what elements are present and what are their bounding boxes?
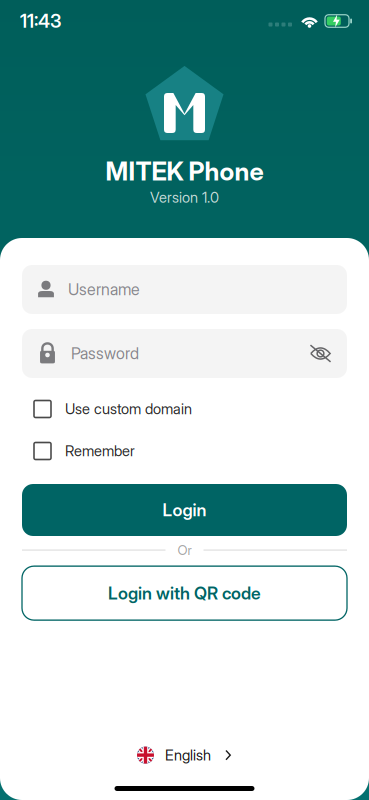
staticText: Use custom domain [65, 400, 192, 418]
staticText: Or [177, 542, 191, 558]
button[interactable]: Use custom domain [22, 395, 347, 423]
staticText: MITEK Phone [105, 156, 263, 187]
staticText: Remember [65, 442, 135, 460]
staticText: Login [162, 499, 206, 520]
staticText: Username [68, 280, 140, 299]
button[interactable]: Login [22, 484, 347, 536]
button[interactable]: English [129, 738, 240, 772]
button[interactable]: Login with QR code [22, 566, 347, 620]
staticText: 11:43 [20, 10, 61, 32]
staticText: Login with QR code [108, 583, 261, 604]
staticText: Password [71, 344, 139, 363]
staticText: English [165, 746, 211, 764]
staticText: Version 1.0 [150, 189, 219, 206]
button[interactable]: Remember [22, 437, 347, 465]
